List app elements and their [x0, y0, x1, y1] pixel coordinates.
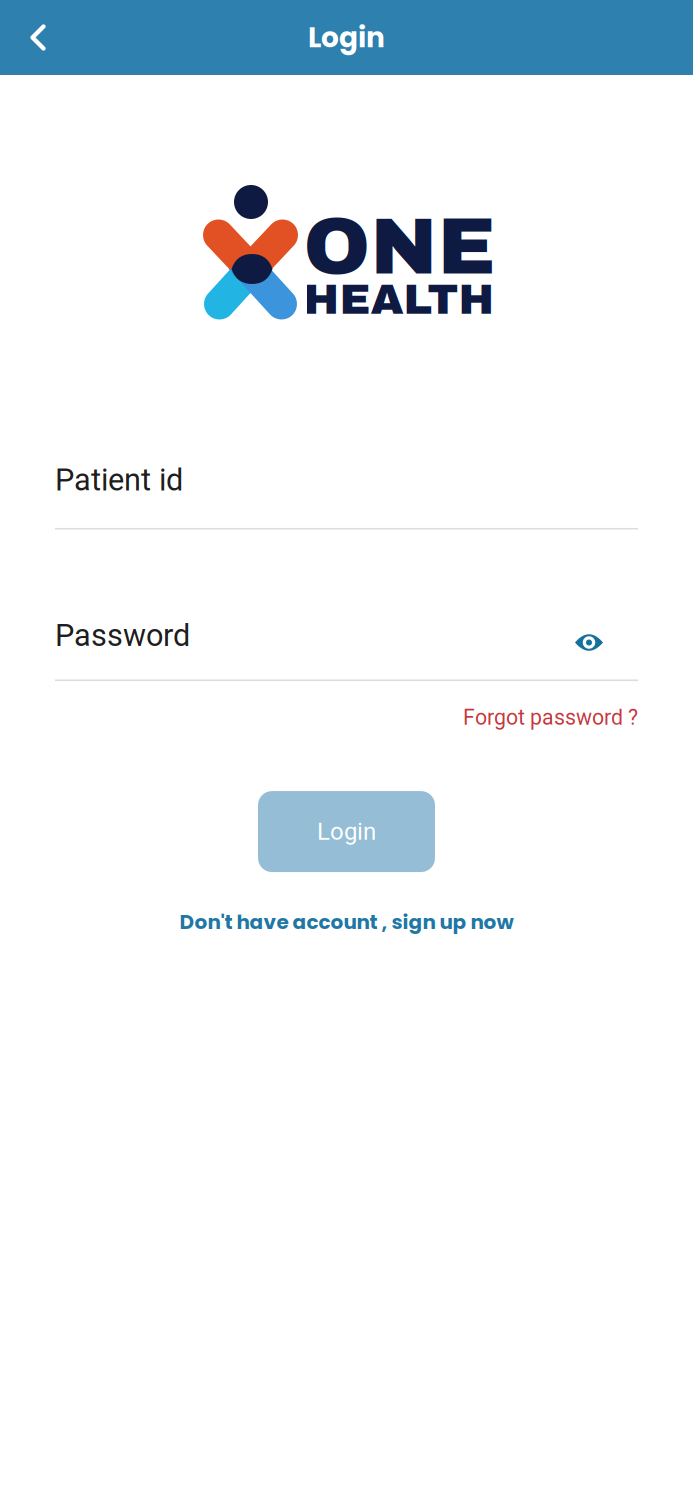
button[interactable]: Login	[258, 791, 435, 872]
button[interactable]: Back	[0, 0, 76, 75]
button[interactable]: Forgot password ?	[463, 705, 638, 730]
staticText: ONE	[303, 203, 495, 290]
staticText: Don't have account , sign up now	[179, 908, 513, 936]
staticText: Patient id	[55, 462, 183, 498]
staticText: Password	[55, 617, 190, 653]
staticText: HEALTH	[303, 276, 494, 323]
staticText: Forgot password ?	[463, 705, 638, 730]
staticText: Login	[308, 18, 385, 57]
button[interactable]: Don't have account , sign up now	[179, 908, 513, 936]
button[interactable]: Show password	[567, 618, 638, 652]
staticText: Login	[317, 817, 376, 846]
